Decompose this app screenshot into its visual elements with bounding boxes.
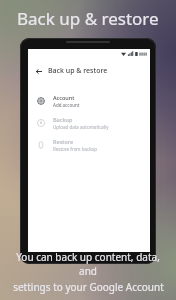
- button[interactable]: Account: [28, 90, 150, 112]
- button[interactable]: Backup: [28, 112, 150, 134]
- staticText: Back up & restore: [48, 66, 108, 76]
- staticText: Add account: [53, 102, 80, 108]
- staticText: Backup: [53, 116, 73, 123]
- staticText: settings to your Google Account: [13, 280, 164, 294]
- button[interactable]: Restore: [28, 134, 150, 156]
- button[interactable]: Back: [28, 60, 48, 82]
- staticText: Restore: [53, 138, 74, 145]
- staticText: Account: [53, 94, 75, 101]
- staticText: Upload data automatically: [53, 124, 109, 130]
- staticText: Back up & restore: [17, 7, 159, 30]
- staticText: You can back up content, data, and: [6, 250, 170, 278]
- staticText: Restore from backup: [53, 146, 98, 152]
